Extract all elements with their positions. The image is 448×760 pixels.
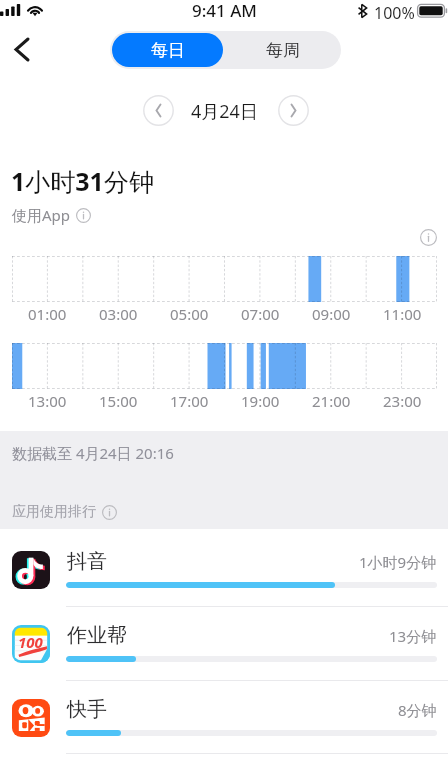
staticText: 07:00: [241, 304, 280, 322]
button[interactable]: Back: [2, 29, 42, 69]
staticText: 11:00: [383, 304, 422, 322]
staticText: 8分钟: [398, 700, 437, 720]
staticText: 23:00: [383, 391, 422, 409]
staticText: 数据截至 4月24日 20:16: [12, 443, 174, 463]
button[interactable]: Previous day: [143, 95, 174, 126]
staticText: 03:00: [99, 304, 138, 322]
button[interactable]: 100: [0, 611, 448, 685]
staticText: 4月24日: [191, 99, 258, 124]
staticText: 100%: [374, 2, 415, 24]
staticText: 9:41 AM: [192, 0, 257, 22]
staticText: 13分钟: [389, 626, 437, 646]
staticText: 快手: [67, 697, 107, 722]
staticText: 100: [18, 632, 43, 652]
button[interactable]: Info: [102, 505, 117, 520]
staticText: 1小时31分钟: [11, 164, 154, 198]
staticText: 19:00: [241, 391, 280, 409]
staticText: 每周: [266, 40, 300, 61]
staticText: 15:00: [99, 391, 138, 409]
staticText: 17:00: [170, 391, 209, 409]
staticText: 05:00: [170, 304, 209, 322]
staticText: 1小时9分钟: [359, 552, 437, 572]
staticText: 21:00: [312, 391, 351, 409]
button[interactable]: Next day: [278, 95, 309, 126]
staticText: 抖音: [67, 549, 107, 574]
staticText: 09:00: [312, 304, 351, 322]
staticText: 应用使用排行: [12, 503, 96, 521]
staticText: 作业帮: [67, 623, 127, 648]
button[interactable]: 每周: [225, 31, 341, 69]
staticText: 每日: [151, 40, 185, 61]
staticText: 01:00: [28, 304, 67, 322]
button[interactable]: Info: [420, 229, 437, 246]
button[interactable]: 每日: [112, 33, 223, 67]
button[interactable]: 快手: [0, 685, 448, 759]
staticText: 13:00: [28, 391, 67, 409]
button[interactable]: Info: [76, 208, 91, 223]
button[interactable]: 抖音: [0, 537, 448, 611]
staticText: 使用App: [12, 205, 71, 225]
